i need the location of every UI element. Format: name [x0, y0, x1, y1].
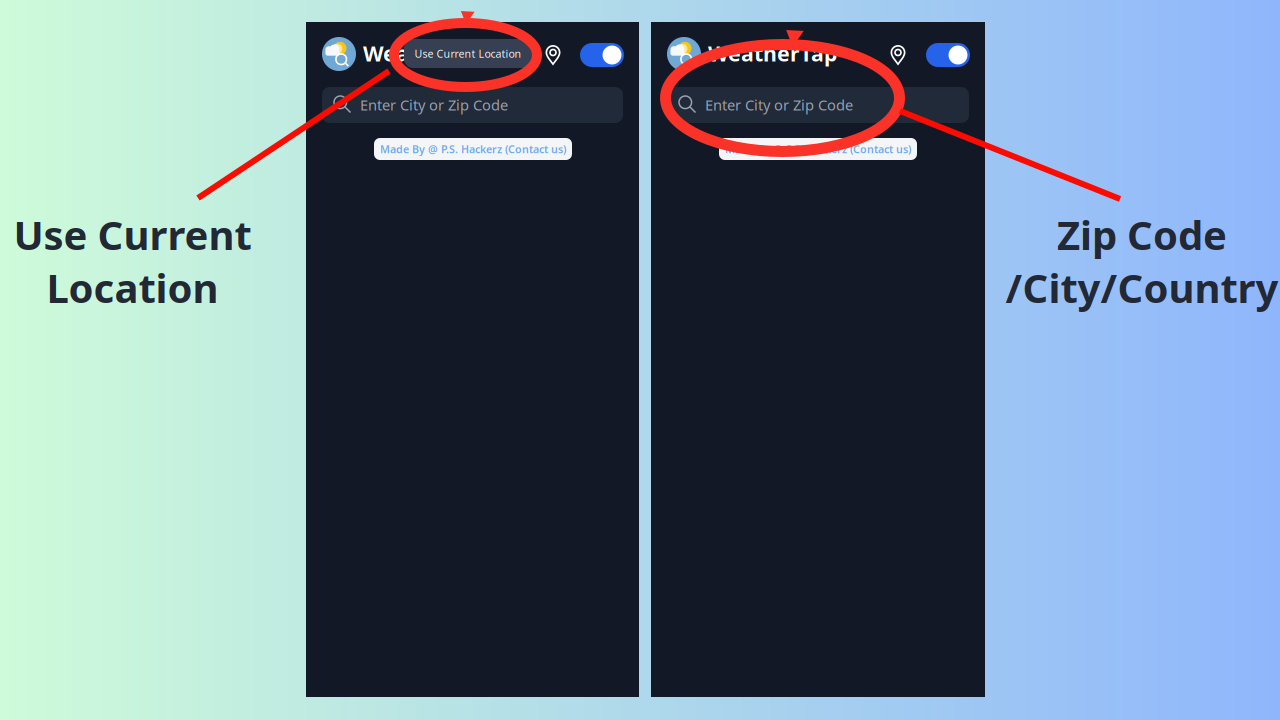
staticText: Location: [46, 261, 218, 314]
button[interactable]: Toggle temperature units: [926, 43, 970, 67]
staticText: Use Current: [13, 208, 251, 261]
button[interactable]: Enter City or Zip Code: [322, 87, 623, 123]
staticText: Zip Code: [1057, 208, 1227, 261]
button[interactable]: Made By @ P.S. Hackerz (Contact us): [719, 138, 917, 160]
button[interactable]: Enter City or Zip Code: [667, 87, 969, 123]
staticText: Made By @ P.S. Hackerz (Contact us): [725, 142, 911, 156]
staticText: Use Current Location: [414, 46, 521, 61]
staticText: Enter City or Zip Code: [705, 95, 853, 114]
staticText: WeatherTap: [363, 39, 492, 67]
staticText: Made By @ P.S. Hackerz (Contact us): [380, 142, 566, 156]
staticText: Enter City or Zip Code: [360, 95, 508, 114]
button[interactable]: Use Current Location: [540, 42, 566, 68]
button[interactable]: Made By @ P.S. Hackerz (Contact us): [374, 138, 572, 160]
button[interactable]: Toggle temperature units: [580, 43, 624, 67]
button[interactable]: Use Current Location: [885, 42, 911, 68]
staticText: WeatherTap: [708, 39, 837, 67]
staticText: /City/Country: [1005, 261, 1278, 314]
